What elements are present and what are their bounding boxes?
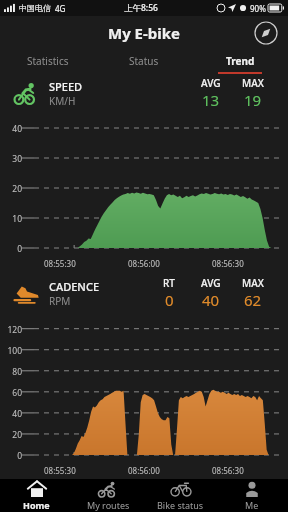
staticText: 中国电信 <box>19 3 51 13</box>
staticText: 62 <box>244 290 262 310</box>
staticText: 4G <box>55 3 66 14</box>
staticText: 90% <box>250 3 266 14</box>
staticText: Statistics <box>27 54 69 68</box>
staticText: 13 <box>202 90 220 110</box>
staticText: 08:56:30 <box>212 465 244 476</box>
button[interactable]: Me <box>216 479 288 512</box>
button[interactable]: Bike status <box>144 479 216 512</box>
staticText: 30 <box>0 153 22 165</box>
button[interactable]: Compass <box>254 21 278 45</box>
staticText: 40 <box>0 408 22 420</box>
staticText: 100 <box>0 345 22 357</box>
staticText: 08:55:30 <box>44 465 76 476</box>
staticText: MAX <box>242 276 264 290</box>
staticText: AVG <box>201 76 221 90</box>
staticText: SPEED <box>49 79 83 94</box>
staticText: Bike status <box>157 499 204 511</box>
staticText: 60 <box>0 387 22 399</box>
staticText: 20 <box>0 183 22 195</box>
staticText: Me <box>245 499 259 511</box>
staticText: 0 <box>0 243 22 255</box>
staticText: CADENCE <box>49 279 100 294</box>
button[interactable]: Trend <box>192 50 288 72</box>
staticText: 80 <box>0 366 22 378</box>
staticText: MAX <box>242 76 264 90</box>
button[interactable]: CADENCE <box>14 276 274 310</box>
staticText: 08:56:00 <box>128 258 160 269</box>
staticText: 19 <box>244 90 262 110</box>
button[interactable]: Home <box>0 479 72 512</box>
button[interactable]: Status <box>96 50 192 72</box>
staticText: Home <box>23 499 50 511</box>
staticText: 40 <box>202 290 220 310</box>
button[interactable]: SPEED <box>14 76 274 110</box>
staticText: AVG <box>201 276 221 290</box>
staticText: 0 <box>165 290 174 310</box>
staticText: RPM <box>49 294 71 308</box>
button[interactable]: My routes <box>72 479 144 512</box>
staticText: RT <box>163 276 175 290</box>
staticText: 0 <box>0 450 22 462</box>
staticText: 40 <box>0 123 22 135</box>
button[interactable]: Statistics <box>0 50 96 72</box>
staticText: 08:55:30 <box>44 258 76 269</box>
staticText: KM/H <box>49 94 76 108</box>
staticText: 120 <box>0 324 22 336</box>
staticText: 08:56:00 <box>128 465 160 476</box>
staticText: 08:56:30 <box>212 258 244 269</box>
staticText: 20 <box>0 429 22 441</box>
staticText: My routes <box>87 499 130 511</box>
staticText: Trend <box>226 54 255 68</box>
staticText: 上午8:56 <box>124 2 158 14</box>
staticText: My E-bike <box>108 23 181 43</box>
staticText: Status <box>129 54 159 68</box>
staticText: 10 <box>0 213 22 225</box>
